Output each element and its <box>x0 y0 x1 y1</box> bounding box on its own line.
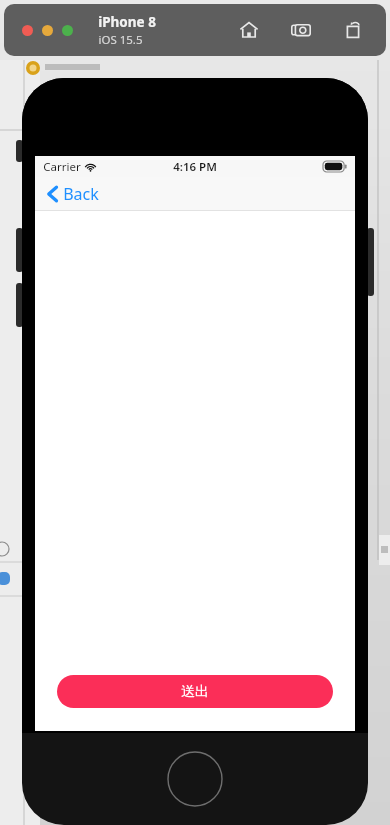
staticText: iPhone 8 <box>98 13 156 31</box>
button[interactable]: Home button <box>167 751 223 807</box>
button[interactable]: 送出 <box>57 675 333 708</box>
button[interactable]: Close <box>22 25 33 36</box>
button[interactable]: Zoom <box>62 25 73 36</box>
button[interactable]: Back <box>43 180 103 208</box>
button[interactable]: Home <box>236 17 262 43</box>
button[interactable]: Screenshot <box>288 17 314 43</box>
staticText: iOS 15.5 <box>98 32 143 48</box>
button[interactable]: Record screen <box>340 17 366 43</box>
staticText: 送出 <box>181 683 209 701</box>
staticText: Back <box>63 183 99 205</box>
staticText: 4:16 PM <box>173 159 217 175</box>
staticText: Carrier <box>43 159 81 175</box>
button[interactable]: Minimise <box>42 25 53 36</box>
